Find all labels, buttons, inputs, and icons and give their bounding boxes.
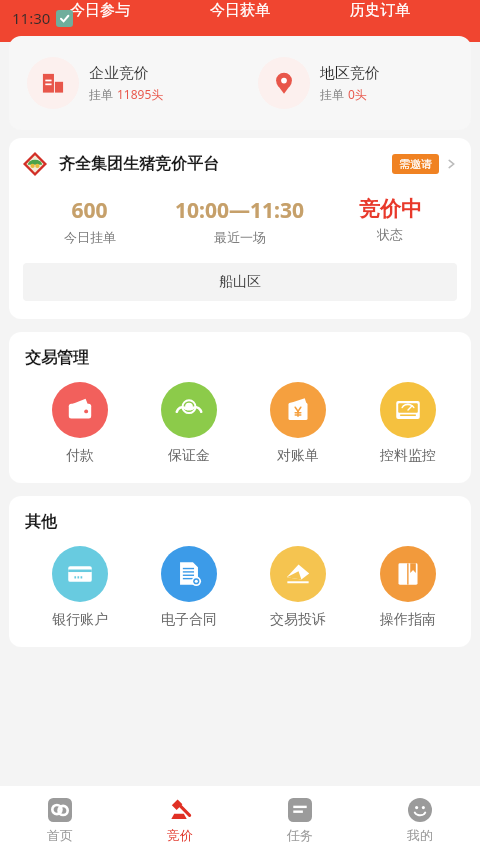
staticText: 交易投诉: [270, 611, 326, 629]
staticText: 任务: [287, 827, 313, 843]
button[interactable]: 我的: [360, 786, 480, 854]
button[interactable]: 企业竞价: [9, 36, 240, 130]
staticText: 电子合同: [161, 611, 217, 629]
button[interactable]: 地区竞价: [240, 36, 471, 130]
staticText: 企业竞价: [89, 64, 149, 83]
staticText: 今日参与: [70, 1, 130, 19]
button[interactable]: 竞价: [120, 786, 240, 854]
staticText: 付款: [66, 447, 94, 465]
button[interactable]: 历史订单: [340, 0, 420, 20]
staticText: 操作指南: [380, 611, 436, 629]
button[interactable]: 船山区: [23, 263, 457, 301]
staticText: 状态: [377, 226, 403, 242]
staticText: 齐全集团生猪竞价平台: [59, 154, 219, 174]
button[interactable]: 交易投诉: [243, 546, 353, 629]
staticText: 今日挂单: [64, 229, 116, 245]
button[interactable]: 控料监控: [353, 382, 463, 465]
staticText: 对账单: [277, 447, 319, 465]
staticText: 今日获单: [210, 1, 270, 19]
staticText: 0头: [348, 86, 367, 102]
staticText: 船山区: [219, 273, 261, 291]
staticText: 10:00—11:30: [175, 196, 304, 225]
button[interactable]: 今日参与: [60, 0, 140, 20]
staticText: 交易管理: [25, 348, 89, 368]
staticText: 挂单: [320, 86, 348, 102]
staticText: 挂单: [89, 86, 117, 102]
other: 查看详情: [445, 158, 457, 170]
button[interactable]: 银行账户: [25, 546, 134, 629]
staticText: 地区竞价: [320, 64, 380, 83]
staticText: 600: [71, 196, 108, 225]
staticText: 最近一场: [214, 229, 266, 245]
button[interactable]: 需邀请: [392, 154, 439, 174]
button[interactable]: 电子合同: [134, 546, 243, 629]
staticText: 竞价中: [359, 196, 422, 222]
staticText: 历史订单: [350, 1, 410, 19]
button[interactable]: 今日获单: [200, 0, 280, 20]
other: 竞价: [168, 798, 192, 822]
staticText: 控料监控: [380, 447, 436, 465]
button[interactable]: 付款: [25, 382, 134, 465]
other: 我的: [408, 798, 432, 822]
button[interactable]: 任务: [240, 786, 360, 854]
button[interactable]: 保证金: [134, 382, 243, 465]
staticText: 需邀请: [399, 157, 432, 171]
other: 首页: [48, 798, 72, 822]
button[interactable]: 首页: [0, 786, 120, 854]
staticText: 银行账户: [52, 611, 108, 629]
button[interactable]: 操作指南: [353, 546, 463, 629]
button[interactable]: 齐全集团生猪竞价平台: [9, 138, 471, 319]
staticText: 我的: [407, 827, 433, 843]
staticText: 11895头: [117, 86, 164, 102]
staticText: 其他: [25, 512, 57, 532]
button[interactable]: 对账单: [243, 382, 353, 465]
staticText: 竞价: [167, 827, 193, 843]
staticText: 11:30: [12, 8, 51, 28]
staticText: 保证金: [168, 447, 210, 465]
other: 任务: [288, 798, 312, 822]
staticText: 首页: [47, 827, 73, 843]
